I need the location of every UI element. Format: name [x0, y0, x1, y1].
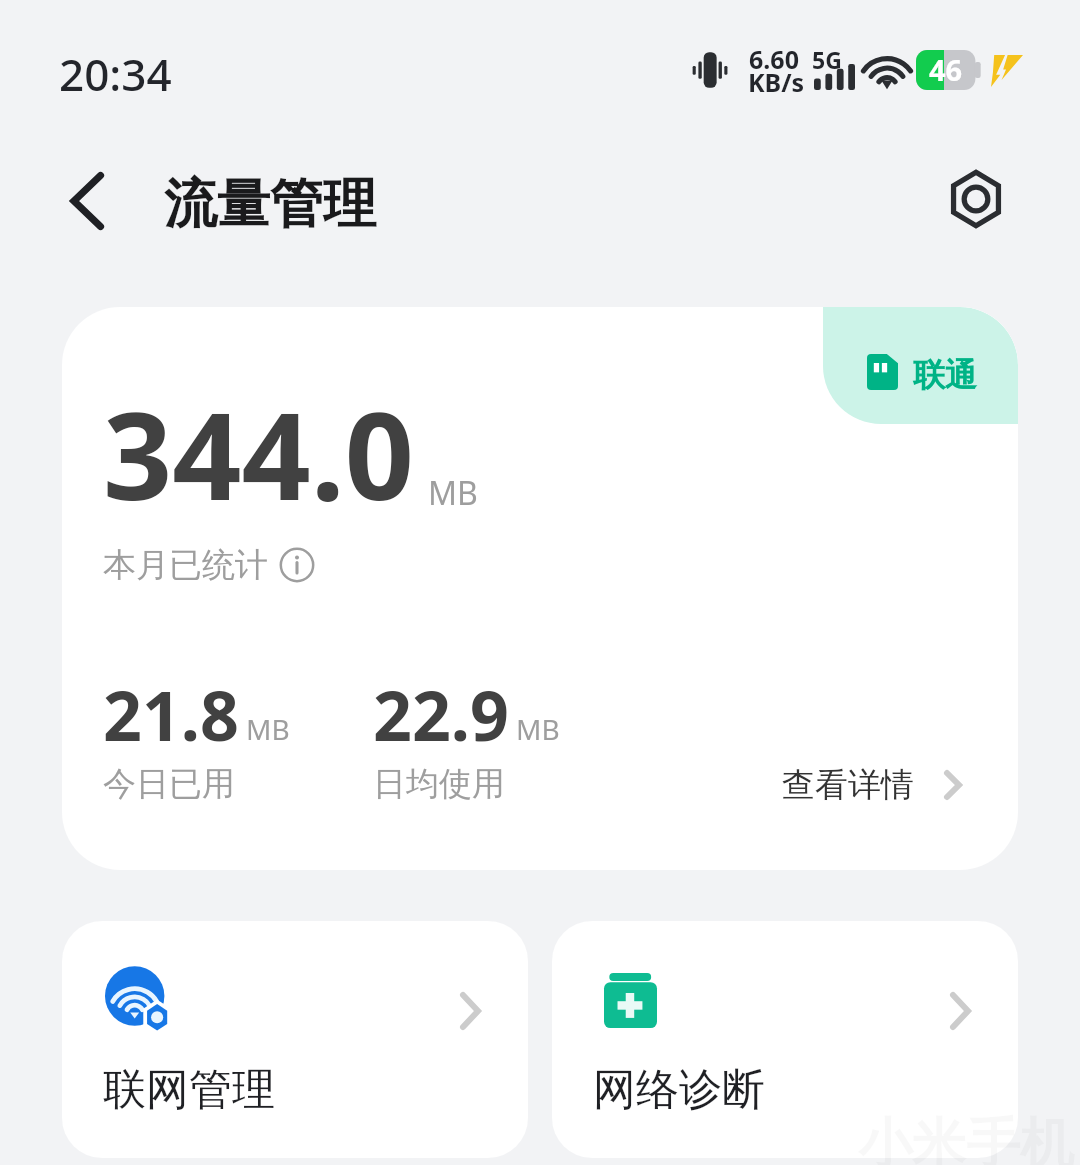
button[interactable]: 网络诊断	[552, 921, 1018, 1158]
staticText: 联网管理	[103, 1063, 275, 1117]
staticText: KB/s	[748, 65, 805, 99]
staticText: 日均使用	[373, 763, 505, 805]
staticText: 6.60	[749, 42, 799, 76]
staticText: 344.0	[103, 371, 414, 536]
staticText: 46	[929, 50, 963, 89]
staticText: 21.8	[103, 668, 239, 761]
staticText: 22.9	[373, 668, 509, 761]
staticText: 查看详情	[782, 764, 914, 806]
button[interactable]: 联通	[62, 307, 1018, 870]
button[interactable]: Back	[36, 151, 136, 251]
staticText: 网络诊断	[593, 1063, 765, 1117]
button[interactable]: Settings	[944, 168, 1008, 230]
staticText: 联通	[913, 355, 977, 395]
staticText: 5G	[812, 44, 842, 75]
staticText: MB	[428, 471, 478, 515]
staticText: 20:34	[59, 44, 172, 104]
staticText: MB	[516, 710, 560, 748]
button[interactable]: 查看详情	[782, 764, 962, 806]
staticText: 流量管理	[164, 171, 376, 238]
staticText: MB	[246, 710, 290, 748]
staticText: 小米手机	[858, 1110, 1074, 1165]
staticText: 今日已用	[103, 763, 235, 805]
staticText: 本月已统计	[103, 544, 268, 586]
button[interactable]: 联网管理	[62, 921, 528, 1158]
